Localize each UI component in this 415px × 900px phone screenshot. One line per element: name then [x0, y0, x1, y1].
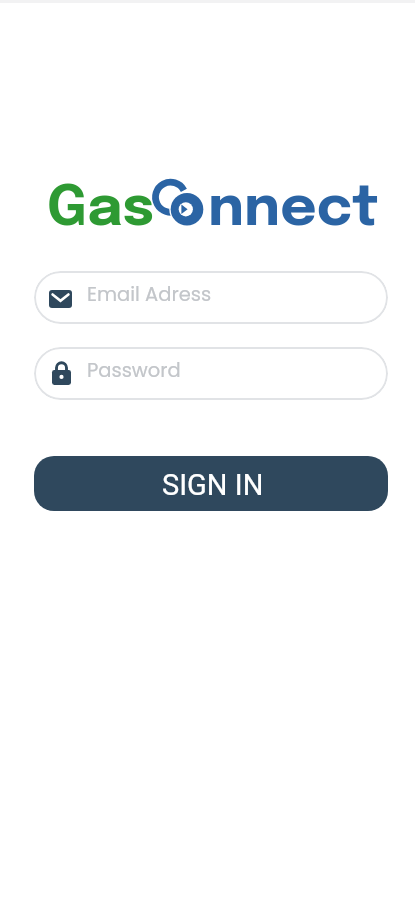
other: Password — [52, 361, 71, 385]
staticText: Email Adress — [87, 281, 212, 308]
staticText: Gas — [47, 181, 154, 238]
button[interactable]: Password — [34, 347, 388, 400]
other: Email — [49, 290, 72, 308]
staticText: SIGN IN — [162, 468, 264, 502]
button[interactable]: SIGN IN — [34, 456, 388, 511]
button[interactable]: Email — [34, 271, 388, 324]
staticText: nnect — [208, 181, 379, 238]
staticText: Password — [87, 357, 181, 384]
